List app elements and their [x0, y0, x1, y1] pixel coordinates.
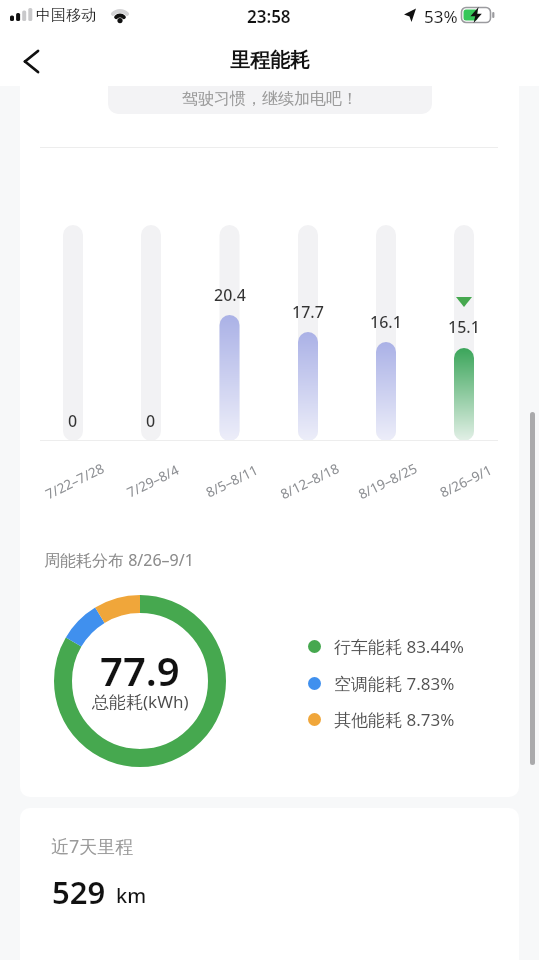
staticText: 驾驶习惯，继续加电吧！: [182, 89, 358, 109]
staticText: 23:58: [247, 5, 291, 28]
staticText: 0: [68, 410, 78, 432]
button[interactable]: [12, 44, 52, 80]
button[interactable]: 空调能耗 7.83%: [308, 672, 455, 695]
staticText: 17.7: [292, 301, 324, 323]
staticText: 中国移动: [36, 6, 96, 25]
staticText: 16.1: [370, 311, 402, 333]
staticText: 8/5–8/11: [203, 461, 261, 501]
staticText: 里程能耗: [230, 48, 310, 73]
staticText: 53%: [424, 5, 458, 28]
staticText: 其他能耗 8.73%: [334, 708, 455, 731]
staticText: 行车能耗 83.44%: [334, 635, 464, 658]
button[interactable]: 驾驶习惯，继续加电吧！: [108, 70, 432, 114]
staticText: 529: [52, 871, 106, 913]
staticText: 空调能耗 7.83%: [334, 672, 455, 695]
staticText: 15.1: [448, 316, 480, 338]
staticText: 总能耗(kWh): [92, 690, 189, 712]
button[interactable]: 行车能耗 83.44%: [308, 635, 464, 658]
staticText: km: [116, 882, 147, 909]
staticText: 7/29–8/4: [124, 461, 182, 501]
button[interactable]: 近7天里程: [20, 808, 519, 960]
staticText: 8/19–8/25: [355, 459, 421, 503]
staticText: 0: [146, 410, 156, 432]
staticText: 近7天里程: [51, 834, 134, 859]
staticText: 周能耗分布 8/26–9/1: [44, 549, 194, 571]
staticText: 20.4: [214, 284, 246, 306]
staticText: 7/22–7/28: [42, 459, 108, 503]
staticText: 8/12–8/18: [277, 459, 343, 503]
staticText: 77.9: [100, 643, 180, 689]
staticText: 8/26–9/1: [437, 461, 495, 501]
button[interactable]: 其他能耗 8.73%: [308, 708, 455, 731]
